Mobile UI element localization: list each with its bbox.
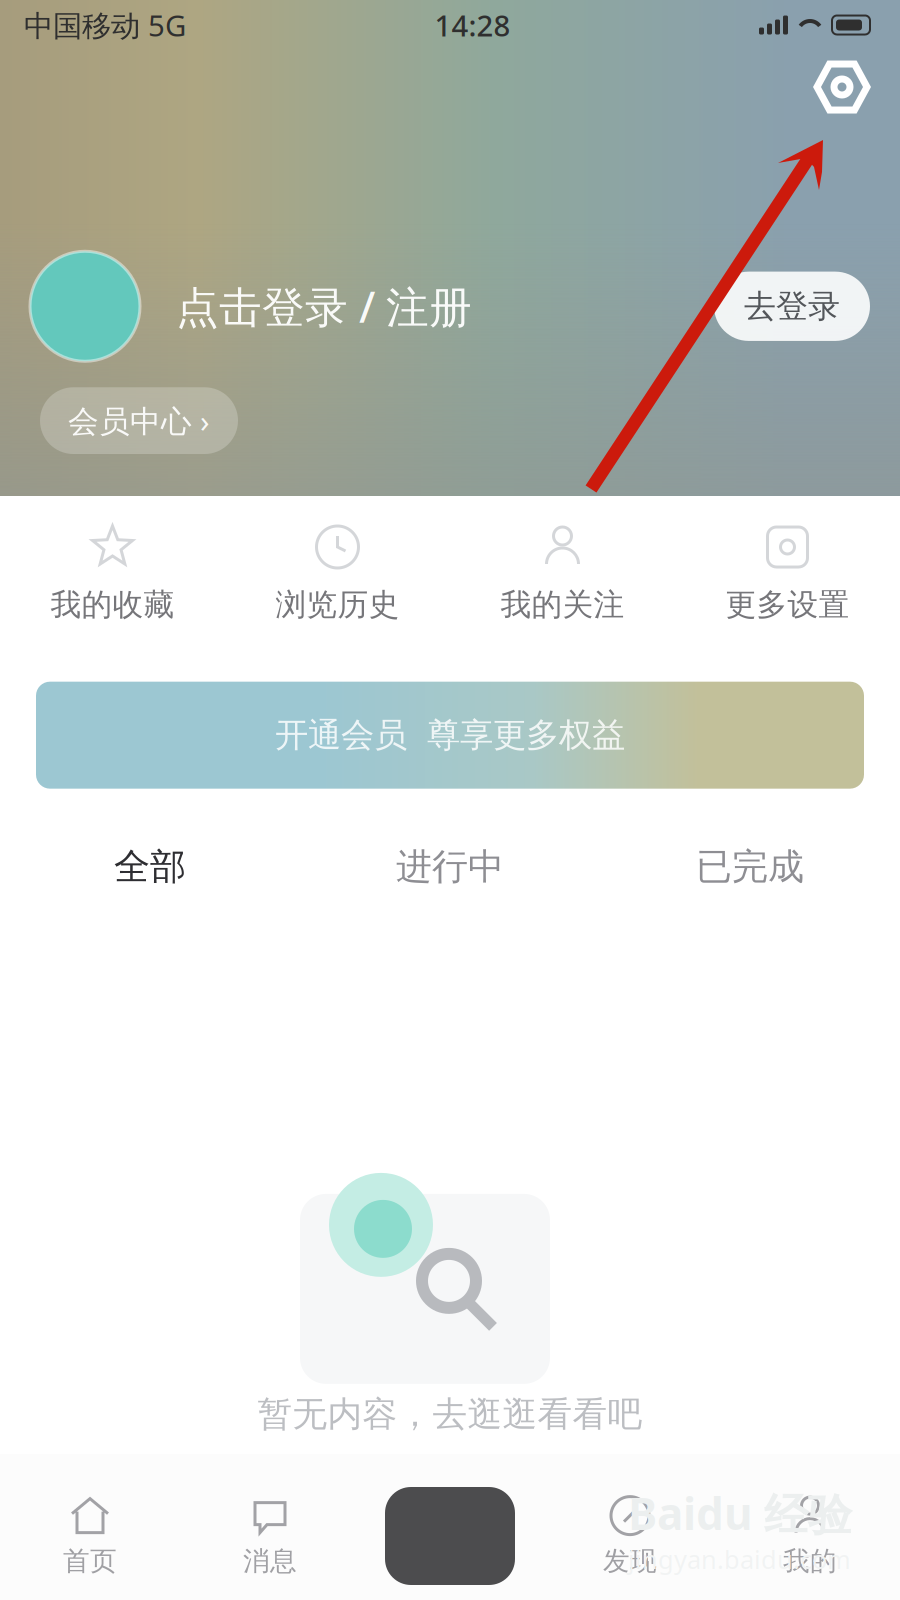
- button[interactable]: Create: [360, 1469, 540, 1585]
- staticText: 首页: [63, 1545, 117, 1577]
- button[interactable]: 开通会员 尊享更多权益: [0, 682, 900, 789]
- button[interactable]: 更多设置: [675, 524, 900, 624]
- button[interactable]: 进行中: [300, 845, 600, 889]
- staticText: 更多设置: [725, 586, 849, 624]
- staticText: 进行中: [396, 845, 504, 889]
- staticText: 暂无内容，去逛逛看看吧: [257, 1393, 642, 1435]
- staticText: 开通会员 尊享更多权益: [275, 715, 625, 756]
- staticText: 我的关注: [500, 586, 624, 624]
- staticText: 消息: [243, 1545, 297, 1577]
- button[interactable]: Settings: [799, 50, 885, 124]
- button[interactable]: 消息: [180, 1477, 360, 1577]
- staticText: 14:28: [434, 5, 510, 44]
- staticText: 我的收藏: [50, 586, 174, 624]
- button[interactable]: 浏览历史: [225, 524, 450, 624]
- staticText: 发现: [603, 1545, 657, 1577]
- staticText: 我的: [783, 1545, 837, 1577]
- staticText: 已完成: [696, 845, 804, 889]
- staticText: 中国移动 5G: [24, 5, 186, 44]
- staticText: 点击登录 / 注册: [176, 278, 472, 335]
- button[interactable]: 已完成: [600, 845, 900, 889]
- staticText: 会员中心 ›: [68, 400, 210, 441]
- button[interactable]: 我的收藏: [0, 524, 225, 624]
- button[interactable]: 会员中心 ›: [40, 387, 238, 454]
- staticText: 浏览历史: [275, 586, 399, 624]
- button[interactable]: Avatar: [30, 251, 140, 361]
- button[interactable]: 首页: [0, 1477, 180, 1577]
- button[interactable]: 我的: [720, 1477, 900, 1577]
- staticText: jingyan.baidu.com: [628, 1542, 851, 1576]
- staticText: 全部: [114, 845, 186, 889]
- staticText: 去登录: [744, 287, 840, 326]
- button[interactable]: 点击登录 / 注册: [140, 278, 472, 335]
- button[interactable]: 去登录: [714, 272, 870, 341]
- button[interactable]: 全部: [0, 845, 300, 889]
- button[interactable]: 我的关注: [450, 524, 675, 624]
- button[interactable]: 发现: [540, 1477, 720, 1577]
- staticText: Baidu 经验: [628, 1484, 852, 1542]
